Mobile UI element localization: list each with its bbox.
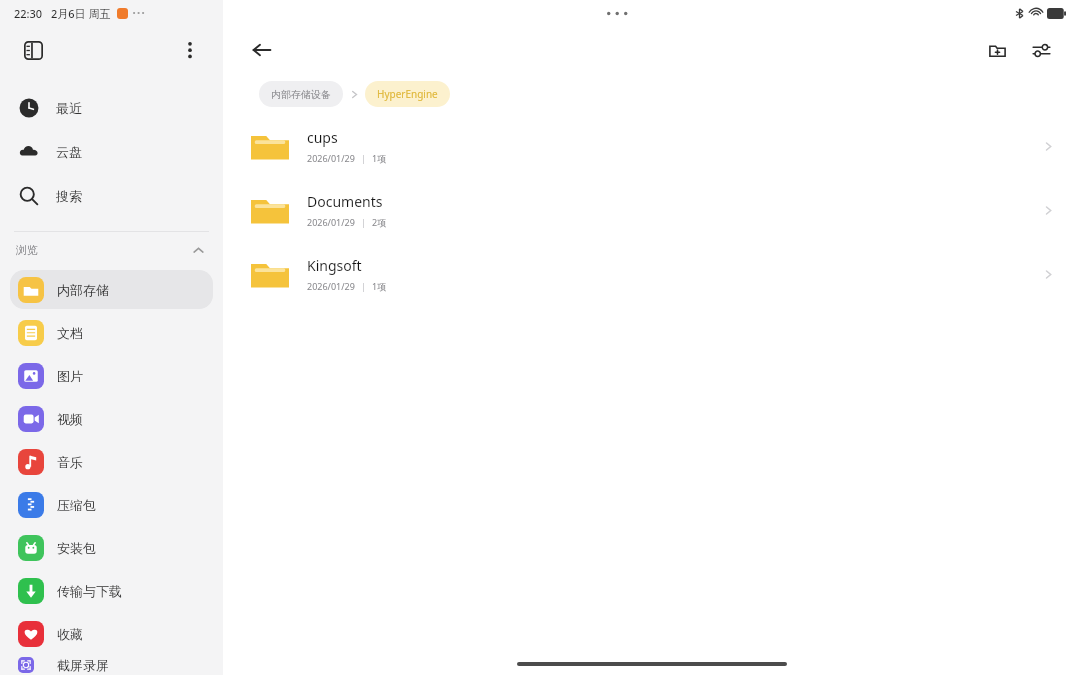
button[interactable]: 截屏录屏 bbox=[10, 657, 213, 673]
button[interactable]: 内部存储 bbox=[10, 270, 213, 309]
staticText: 内部存储设备 bbox=[271, 88, 331, 101]
button[interactable]: 搜索 bbox=[18, 174, 223, 218]
staticText: | bbox=[361, 152, 366, 164]
button[interactable]: 浏览 bbox=[16, 232, 205, 268]
staticText: 图片 bbox=[57, 368, 83, 384]
button[interactable]: 音乐 bbox=[10, 442, 213, 481]
button[interactable]: 云盘 bbox=[18, 130, 223, 174]
button[interactable]: 压缩包 bbox=[10, 485, 213, 524]
staticText: 搜索 bbox=[56, 188, 82, 204]
staticText: 2026/01/29 bbox=[307, 216, 355, 228]
button[interactable]: 最近 bbox=[18, 86, 223, 130]
staticText: Documents bbox=[307, 192, 383, 211]
staticText: 2026/01/29 bbox=[307, 152, 355, 164]
staticText: cups bbox=[307, 128, 338, 147]
staticText: 1项 bbox=[372, 152, 387, 164]
staticText: 传输与下载 bbox=[57, 583, 122, 599]
staticText: 压缩包 bbox=[57, 497, 96, 513]
button[interactable]: 收藏 bbox=[10, 614, 213, 653]
button[interactable]: Kingsoft bbox=[223, 242, 1080, 306]
button[interactable]: Sort options bbox=[1022, 31, 1060, 69]
staticText: 2月6日 周五 bbox=[51, 6, 111, 21]
staticText: | bbox=[361, 216, 366, 228]
button[interactable]: Toggle sidebar bbox=[16, 33, 50, 67]
staticText: 最近 bbox=[56, 100, 82, 116]
staticText: Kingsoft bbox=[307, 256, 362, 275]
staticText: HyperEngine bbox=[377, 87, 438, 101]
staticText: 安装包 bbox=[57, 540, 96, 556]
button[interactable]: 视频 bbox=[10, 399, 213, 438]
button[interactable]: 图片 bbox=[10, 356, 213, 395]
button[interactable]: 安装包 bbox=[10, 528, 213, 567]
staticText: 浏览 bbox=[16, 243, 38, 257]
staticText: 22:30 bbox=[14, 6, 43, 21]
staticText: 收藏 bbox=[57, 626, 83, 642]
staticText: 云盘 bbox=[56, 144, 82, 160]
staticText: 截屏录屏 bbox=[57, 657, 109, 673]
button[interactable]: HyperEngine bbox=[365, 81, 450, 107]
button[interactable]: New folder bbox=[978, 31, 1016, 69]
staticText: 音乐 bbox=[57, 454, 83, 470]
staticText: 内部存储 bbox=[57, 282, 109, 298]
staticText: 2026/01/29 bbox=[307, 280, 355, 292]
staticText: 2项 bbox=[372, 216, 387, 228]
button[interactable]: More options bbox=[173, 33, 207, 67]
button[interactable]: 内部存储设备 bbox=[259, 81, 343, 107]
staticText: 视频 bbox=[57, 411, 83, 427]
button[interactable]: 文档 bbox=[10, 313, 213, 352]
button[interactable]: cups bbox=[223, 114, 1080, 178]
staticText: 1项 bbox=[372, 280, 387, 292]
staticText: 文档 bbox=[57, 325, 83, 341]
button[interactable]: 传输与下载 bbox=[10, 571, 213, 610]
staticText: | bbox=[361, 280, 366, 292]
button[interactable]: Back bbox=[243, 31, 281, 69]
button[interactable]: Documents bbox=[223, 178, 1080, 242]
